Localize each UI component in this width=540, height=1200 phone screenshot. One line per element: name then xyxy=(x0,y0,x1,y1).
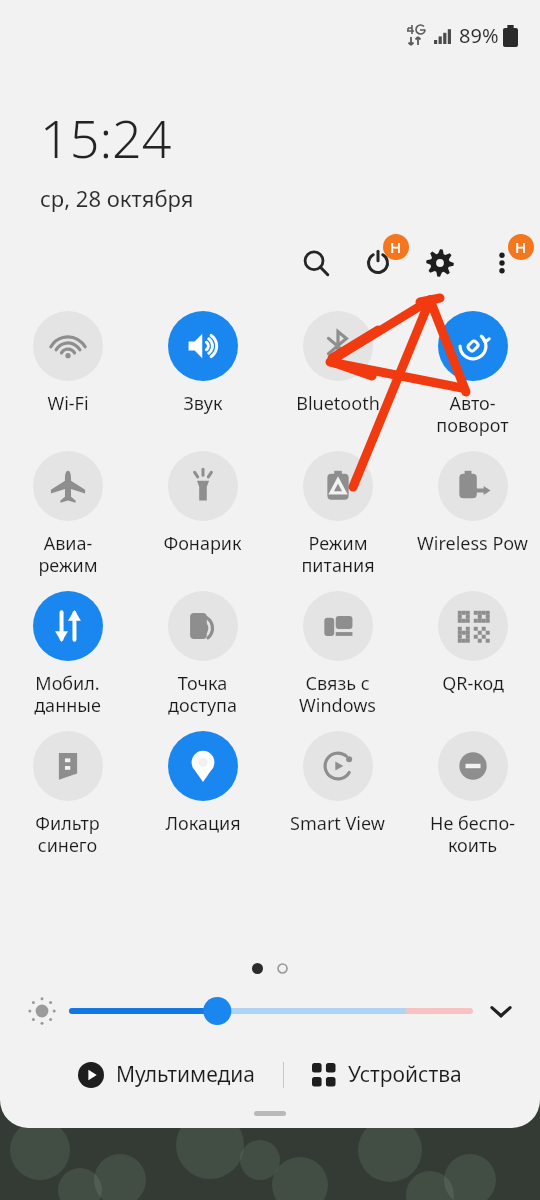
staticText: Точка доступа xyxy=(168,671,237,717)
button[interactable]: Режим питания xyxy=(270,447,405,577)
button[interactable]: Wireless Pow xyxy=(405,447,540,556)
staticText: Фильтр синего xyxy=(35,811,100,857)
staticText: H xyxy=(515,237,527,257)
staticText: Звук xyxy=(183,391,223,416)
staticText: Связь с Windows xyxy=(299,671,376,717)
button[interactable]: Точка доступа xyxy=(135,587,270,717)
staticText: Bluetooth xyxy=(296,391,380,416)
staticText: Устройства xyxy=(348,1060,462,1089)
button[interactable]: QR-код xyxy=(405,587,540,696)
staticText: 89% xyxy=(459,22,499,49)
staticText: Авиа- режим xyxy=(38,531,98,577)
staticText: Wireless Pow xyxy=(417,531,528,556)
staticText: Фонарик xyxy=(163,531,242,556)
button[interactable]: Авиа- режим xyxy=(0,447,135,577)
staticText: Режим питания xyxy=(301,531,375,577)
staticText: Wi-Fi xyxy=(47,391,89,416)
button[interactable]: Мультимедиа xyxy=(68,1054,265,1095)
staticText: 15:24 xyxy=(40,102,172,173)
button[interactable]: Фонарик xyxy=(135,447,270,556)
button[interactable]: Связь с Windows xyxy=(270,587,405,717)
button[interactable]: Звук xyxy=(135,307,270,416)
staticText: QR-код xyxy=(442,671,504,696)
staticText: Мобил. данные xyxy=(34,671,101,717)
button[interactable]: Локация xyxy=(135,727,270,836)
staticText: Не беспо- коить xyxy=(430,811,515,857)
staticText: Локация xyxy=(165,811,241,836)
button[interactable]: Фильтр синего xyxy=(0,727,135,857)
staticText: Мультимедиа xyxy=(116,1060,255,1089)
button[interactable]: Search xyxy=(294,241,338,285)
staticText: Авто- поворот xyxy=(436,391,509,437)
button[interactable]: Bluetooth xyxy=(270,307,405,416)
button[interactable]: Устройства xyxy=(302,1054,472,1095)
button[interactable]: Не беспо- коить xyxy=(405,727,540,857)
button[interactable]: Settings xyxy=(418,241,462,285)
button[interactable]: Мобил. данные xyxy=(0,587,135,717)
staticText: ср, 28 октября xyxy=(40,183,194,213)
button[interactable]: Brightness xyxy=(72,996,470,1026)
button[interactable]: Авто- поворот xyxy=(405,307,540,437)
button[interactable]: Smart View xyxy=(270,727,405,836)
staticText: Smart View xyxy=(290,811,385,836)
button[interactable]: Power off xyxy=(356,241,400,285)
button[interactable]: Expand xyxy=(482,992,520,1030)
button[interactable]: More options xyxy=(480,241,524,285)
button[interactable]: Wi-Fi xyxy=(0,307,135,416)
staticText: H xyxy=(390,237,402,257)
